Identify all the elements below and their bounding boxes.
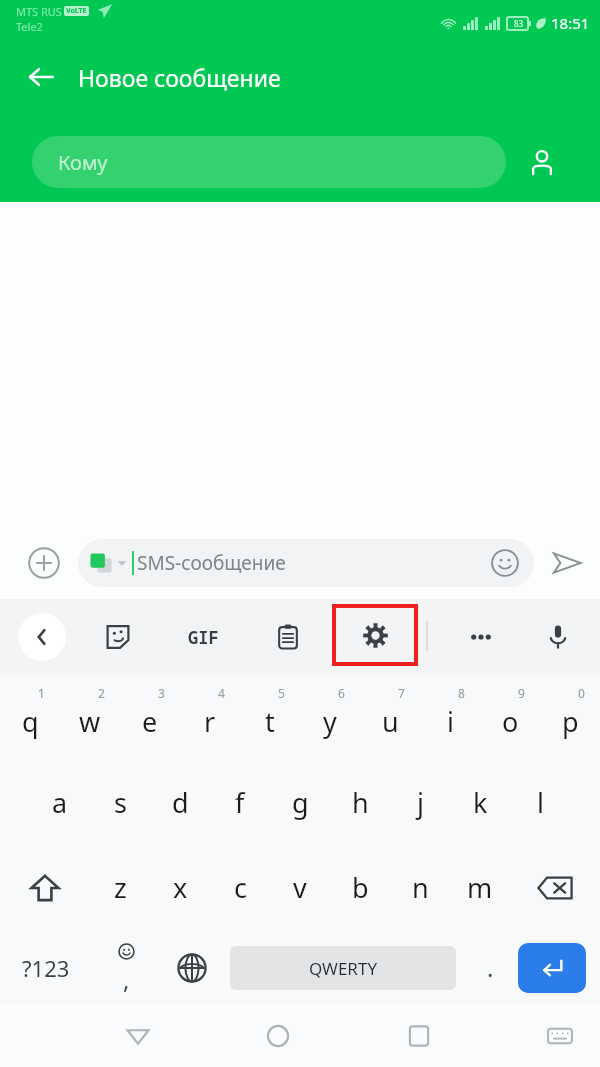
button[interactable]: 9 (480, 675, 540, 760)
button[interactable]: Back (112, 1010, 164, 1062)
staticText: Новое сообщение (78, 62, 281, 93)
staticText: 6 (338, 685, 345, 701)
staticText: j (417, 784, 424, 821)
button[interactable]: g (270, 760, 330, 845)
staticText: ?123 (22, 953, 70, 983)
button[interactable]: a (30, 760, 90, 845)
staticText: w (79, 703, 101, 740)
staticText: g (292, 784, 309, 821)
button[interactable]: Back (18, 54, 64, 100)
button[interactable]: Shift (0, 845, 90, 930)
staticText: Кому (58, 149, 108, 176)
staticText: 8 (458, 685, 465, 701)
button[interactable]: Attach (22, 541, 66, 585)
staticText: , (123, 963, 130, 996)
button[interactable]: Backspace (510, 845, 600, 930)
staticText: MTS RUS (16, 4, 62, 19)
staticText: k (473, 784, 488, 821)
staticText: 4 (218, 685, 225, 701)
button[interactable]: n (390, 845, 450, 930)
button[interactable]: x (150, 845, 210, 930)
button[interactable]: 4 (180, 675, 240, 760)
button[interactable]: Hide keyboard (534, 1010, 586, 1062)
button[interactable]: 6 (300, 675, 360, 760)
staticText: s (114, 784, 127, 821)
staticText: 1 (38, 685, 45, 701)
staticText: v (293, 869, 307, 906)
button[interactable]: f (210, 760, 270, 845)
staticText: n (412, 869, 429, 906)
button[interactable]: Keyboard tool (179, 613, 227, 661)
button[interactable]: QWERTY (230, 946, 456, 990)
button[interactable]: Settings (336, 608, 414, 662)
button[interactable]: 5 (240, 675, 300, 760)
staticText: 7 (398, 685, 405, 701)
button[interactable]: Home (252, 1010, 304, 1062)
button[interactable]: 7 (360, 675, 420, 760)
staticText: Tele2 (16, 19, 43, 34)
staticText: e (142, 703, 158, 740)
button[interactable]: ?123 (0, 930, 92, 1005)
button[interactable]: Collapse toolbar (18, 613, 66, 661)
button[interactable]: 8 (420, 675, 480, 760)
staticText: 18:51 (551, 13, 590, 33)
staticText: o (502, 703, 519, 740)
button[interactable]: Recents (393, 1010, 445, 1062)
staticText: m (467, 869, 493, 906)
button[interactable]: Change language (160, 930, 224, 1005)
button[interactable]: h (330, 760, 390, 845)
staticText: 83 (514, 18, 524, 29)
staticText: z (114, 869, 127, 906)
staticText: h (352, 784, 369, 821)
button[interactable]: . (462, 930, 518, 1005)
button[interactable]: Keyboard tool (264, 613, 312, 661)
staticText: i (447, 703, 454, 740)
staticText: q (22, 703, 39, 740)
staticText: 0 (578, 685, 585, 701)
button[interactable]: k (450, 760, 510, 845)
staticText: 3 (158, 685, 165, 701)
button[interactable]: Emoji and comma (92, 930, 160, 1005)
staticText: x (173, 869, 188, 906)
button[interactable]: l (510, 760, 570, 845)
staticText: r (204, 703, 216, 740)
staticText: VoLTE (66, 6, 87, 16)
button[interactable]: v (270, 845, 330, 930)
staticText: b (352, 869, 369, 906)
button[interactable]: 3 (120, 675, 180, 760)
button[interactable]: s (90, 760, 150, 845)
staticText: 9 (518, 685, 525, 701)
button[interactable]: m (450, 845, 510, 930)
staticText: SMS-сообщение (137, 550, 286, 576)
staticText: y (323, 703, 337, 740)
button[interactable]: Keyboard tool (457, 613, 505, 661)
staticText: QWERTY (309, 957, 378, 980)
button[interactable]: j (390, 760, 450, 845)
button[interactable]: 2 (60, 675, 120, 760)
staticText: d (172, 784, 189, 821)
staticText: p (562, 703, 579, 740)
staticText: 2 (98, 685, 105, 701)
staticText: t (265, 703, 275, 740)
button[interactable]: Send (544, 540, 590, 586)
button[interactable]: Кому (32, 136, 506, 188)
staticText: c (234, 869, 247, 906)
button[interactable]: Emoji (488, 546, 522, 580)
staticText: 5 (278, 685, 285, 701)
staticText: l (537, 784, 544, 821)
staticText: f (235, 784, 245, 821)
button[interactable]: Keyboard tool (94, 613, 142, 661)
button[interactable]: z (90, 845, 150, 930)
button[interactable]: Enter (518, 943, 586, 993)
staticText: GIF (188, 626, 219, 649)
button[interactable]: Add contact (520, 140, 564, 184)
button[interactable]: c (210, 845, 270, 930)
button[interactable]: SMS-сообщение (78, 539, 534, 587)
button[interactable]: 1 (0, 675, 60, 760)
button[interactable]: d (150, 760, 210, 845)
button[interactable]: b (330, 845, 390, 930)
button[interactable]: 0 (540, 675, 600, 760)
button[interactable]: Voice input (534, 613, 582, 661)
staticText: . (487, 951, 494, 984)
staticText: a (52, 784, 68, 821)
